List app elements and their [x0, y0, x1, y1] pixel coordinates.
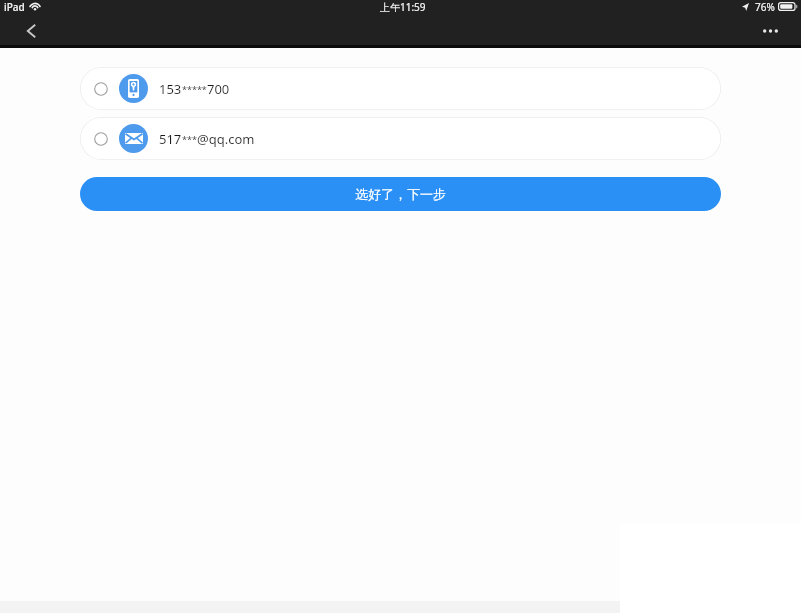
staticText: *** — [182, 133, 197, 145]
staticText: 153 — [159, 80, 182, 98]
button[interactable]: 选好了，下一步 — [80, 177, 721, 211]
staticText: 选好了，下一步 — [355, 186, 446, 202]
button[interactable]: 153 — [80, 67, 721, 110]
staticText: 700 — [207, 80, 230, 98]
button[interactable]: 517 — [80, 117, 721, 160]
staticText: 76% — [755, 0, 775, 13]
button[interactable]: Back — [17, 17, 45, 45]
staticText: iPad — [4, 0, 25, 13]
staticText: @qq.com — [197, 130, 255, 148]
staticText: 517 — [159, 130, 182, 148]
button[interactable]: More options — [756, 17, 784, 45]
staticText: 上午11:59 — [380, 0, 426, 13]
staticText: ***** — [182, 83, 207, 95]
